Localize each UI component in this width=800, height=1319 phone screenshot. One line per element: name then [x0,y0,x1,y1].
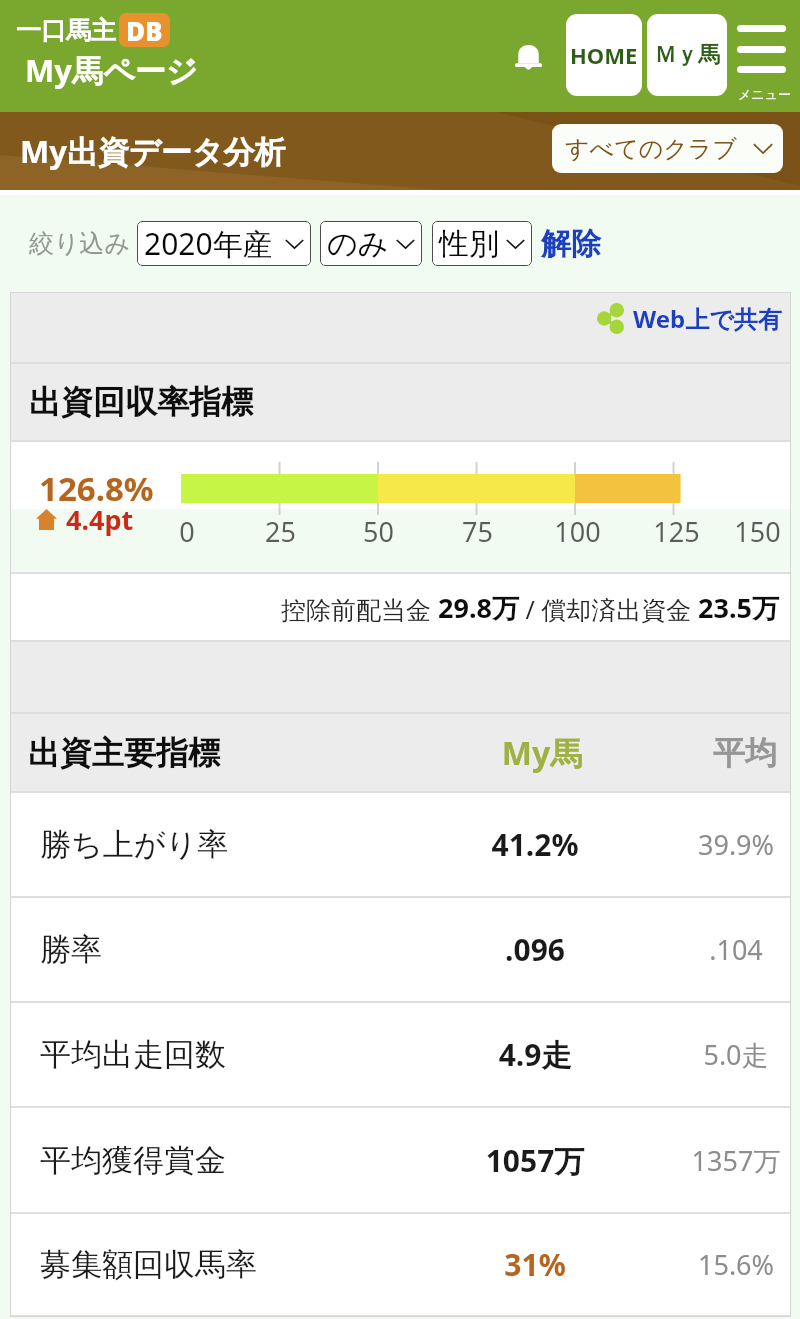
staticText: .096 [389,929,681,970]
staticText: My馬 [403,731,681,775]
button[interactable]: Menu [733,14,791,106]
staticText: 平均出走回数 [40,1035,226,1074]
staticText: 出資回収率指標 [29,382,253,422]
button[interactable]: Notifications [502,30,554,82]
staticText: 25 [265,513,296,550]
button[interactable]: のみ [320,221,422,266]
button[interactable]: 平均獲得賞金 [10,1108,791,1212]
staticText: 絞り込み [29,228,131,259]
staticText: 平均 [699,733,791,773]
staticText: Web上で共有 [633,302,782,335]
staticText: 150 [734,513,781,550]
staticText: 出資主要指標 [28,733,220,773]
button[interactable]: Ｍｙ馬 [647,14,727,96]
staticText: 1057万 [389,1140,681,1181]
staticText: 23.5万 [698,589,779,626]
button[interactable]: すべてのクラブ [552,124,783,173]
staticText: 100 [554,513,601,550]
button[interactable]: HOME [566,14,642,96]
button[interactable]: Web上で共有 [596,302,782,335]
staticText: Ｍｙ馬 [654,41,720,69]
staticText: 勝ち上がり率 [40,825,229,864]
button[interactable]: 勝ち上がり率 [10,793,791,896]
button[interactable]: 解除 [541,225,601,263]
staticText: 4.4pt [66,501,134,538]
button[interactable]: 平均出走回数 [10,1003,791,1106]
staticText: / 償却済出資金 [519,592,698,626]
staticText: 39.9% [681,826,791,863]
staticText: 126.8% [39,466,154,511]
staticText: すべてのクラブ [565,134,737,164]
staticText: .104 [681,931,791,968]
staticText: 一口馬主 [16,15,116,46]
staticText: のみ [327,225,389,263]
staticText: 1357万 [681,1142,791,1179]
staticText: 募集額回収馬率 [40,1245,257,1284]
staticText: DB [126,13,163,47]
staticText: 5.0走 [681,1036,791,1073]
staticText: 性別 [439,225,499,263]
staticText: 125 [653,513,700,550]
staticText: 29.8万 [438,589,519,626]
button[interactable]: 募集額回収馬率 [10,1214,791,1315]
staticText: My馬ページ [25,49,198,91]
staticText: 2020年産 [144,223,273,264]
staticText: My出資データ分析 [20,130,286,172]
staticText: 平均獲得賞金 [40,1141,226,1180]
staticText: メニュー [738,86,791,102]
staticText: 41.2% [389,824,681,865]
staticText: 75 [462,513,493,550]
button[interactable]: 性別 [432,221,532,266]
button[interactable]: 2020年産 [137,221,311,266]
staticText: 50 [363,513,394,550]
button[interactable]: 勝率 [10,898,791,1001]
staticText: 4.9走 [389,1034,681,1075]
staticText: 勝率 [40,930,102,969]
staticText: 15.6% [681,1246,791,1283]
staticText: 31% [389,1244,681,1285]
staticText: 0 [179,513,195,550]
staticText: HOME [570,40,638,70]
staticText: 控除前配当金 [281,592,438,626]
